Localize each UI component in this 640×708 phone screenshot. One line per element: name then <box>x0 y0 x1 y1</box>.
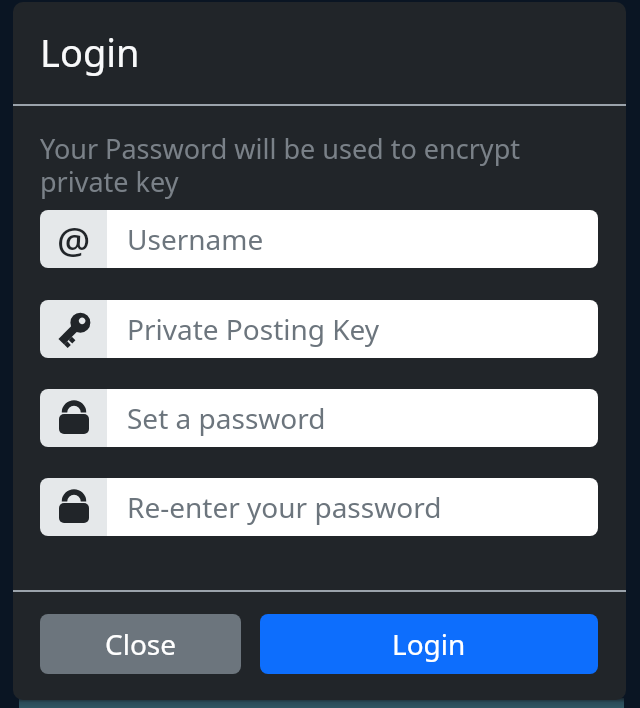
staticText: Username <box>127 220 264 258</box>
staticText: Login <box>392 625 466 663</box>
button[interactable]: @ <box>40 210 598 268</box>
button[interactable]: Login <box>260 614 598 674</box>
staticText: Set a password <box>127 399 326 437</box>
button[interactable]: Private Posting Key <box>40 300 598 358</box>
staticText: Re-enter your password <box>127 488 442 526</box>
staticText: Your Password will be used to encrypt pr… <box>40 130 520 200</box>
staticText: Private Posting Key <box>127 310 380 348</box>
button[interactable]: Re-enter your password <box>40 478 598 536</box>
staticText: Login <box>40 26 140 78</box>
staticText: @ <box>57 214 91 264</box>
staticText: Close <box>105 625 177 663</box>
button[interactable]: Set a password <box>40 389 598 447</box>
button[interactable]: Close <box>40 614 241 674</box>
